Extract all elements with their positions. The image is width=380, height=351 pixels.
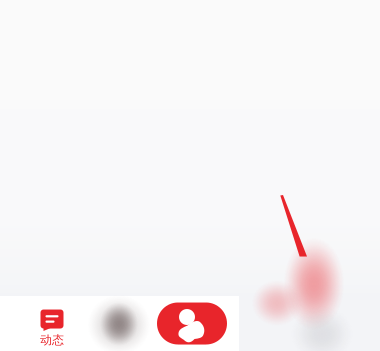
button[interactable]: 联系人 (154, 296, 230, 351)
staticText: 动态 (40, 333, 64, 347)
button[interactable]: 消息 (85, 296, 153, 351)
button[interactable]: 动态 (18, 296, 86, 351)
